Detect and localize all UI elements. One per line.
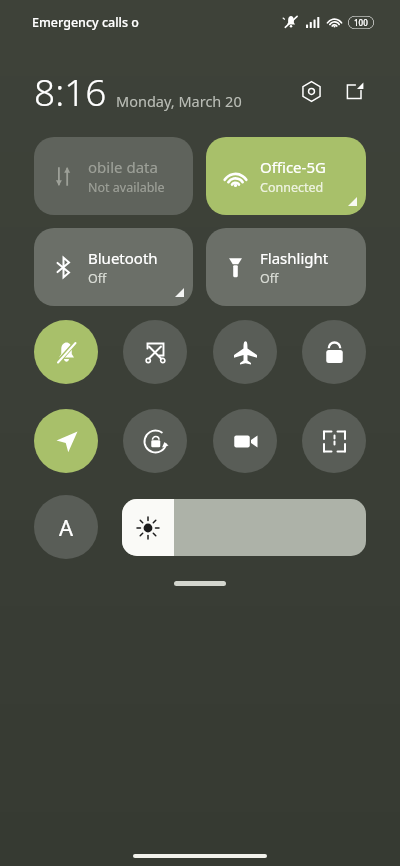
staticText: Off	[260, 270, 279, 287]
button[interactable]: Screen cast	[123, 320, 187, 384]
button[interactable]: Silent mode	[34, 320, 98, 384]
button[interactable]: Airplane mode	[213, 320, 277, 384]
button[interactable]: Brightness	[122, 499, 366, 556]
staticText: Bluetooth	[88, 248, 158, 268]
staticText: Office-5G	[260, 157, 326, 177]
button[interactable]: Office-5G	[206, 137, 366, 215]
staticText: Emergency calls o	[32, 14, 139, 31]
staticText: A	[59, 512, 74, 542]
button[interactable]: Location	[34, 409, 98, 473]
button[interactable]: Settings	[294, 74, 328, 108]
button[interactable]: Auto rotate	[123, 409, 187, 473]
button[interactable]: obile data	[34, 137, 193, 215]
button[interactable]: Flashlight	[206, 228, 366, 306]
button[interactable]: Edit	[338, 74, 372, 108]
button[interactable]: Bluetooth	[34, 228, 193, 306]
staticText: Flashlight	[260, 248, 329, 268]
button[interactable]: Lock screen	[302, 320, 366, 384]
staticText: 8:16	[34, 66, 107, 116]
staticText: obile data	[88, 157, 158, 177]
staticText: Connected	[260, 179, 324, 196]
staticText: 100	[354, 17, 368, 28]
staticText: Not available	[88, 179, 165, 196]
staticText: Off	[88, 270, 107, 287]
button[interactable]: Auto brightness	[34, 495, 98, 559]
button[interactable]: Screen record	[213, 409, 277, 473]
staticText: Monday, March 20	[116, 91, 242, 111]
button[interactable]: Scan	[302, 409, 366, 473]
